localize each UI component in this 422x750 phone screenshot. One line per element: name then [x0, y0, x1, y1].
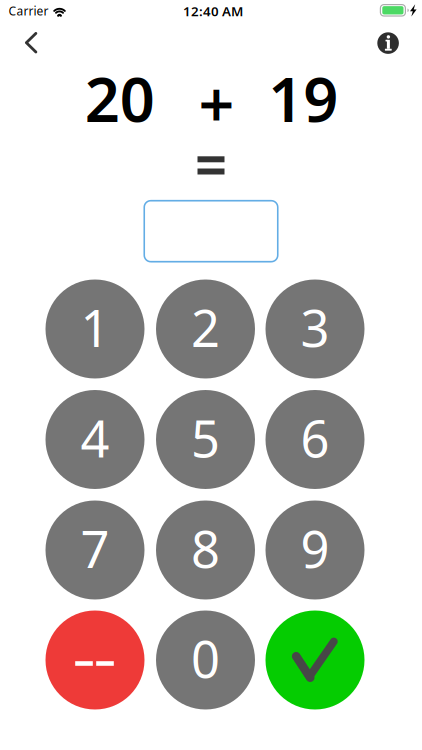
button[interactable]: 0: [156, 610, 255, 709]
staticText: 20: [85, 58, 155, 139]
staticText: +: [198, 62, 234, 145]
staticText: 8: [191, 515, 220, 582]
button[interactable]: 2: [156, 279, 255, 378]
button[interactable]: 4: [45, 390, 144, 489]
button[interactable]: 6: [265, 390, 364, 489]
staticText: 19: [268, 58, 338, 139]
button[interactable]: Submit: [265, 610, 364, 709]
staticText: Carrier: [9, 3, 49, 19]
staticText: 12:40 AM: [183, 2, 243, 20]
button[interactable]: 1: [45, 279, 144, 378]
staticText: 3: [300, 294, 329, 361]
button[interactable]: 3: [265, 279, 364, 378]
staticText: 6: [300, 404, 329, 471]
staticText: 9: [300, 515, 329, 582]
button[interactable]: 9: [265, 500, 364, 599]
button[interactable]: 5: [156, 390, 255, 489]
button[interactable]: Back: [9, 21, 53, 65]
staticText: 2: [191, 294, 220, 361]
staticText: 1: [80, 294, 109, 361]
staticText: 7: [80, 515, 109, 582]
staticText: 5: [191, 404, 220, 471]
staticText: 0: [191, 625, 220, 692]
button[interactable]: 8: [156, 500, 255, 599]
button[interactable]: 7: [45, 500, 144, 599]
button[interactable]: Info: [366, 21, 410, 65]
staticText: 4: [80, 404, 109, 471]
button[interactable]: Delete: [45, 610, 144, 709]
